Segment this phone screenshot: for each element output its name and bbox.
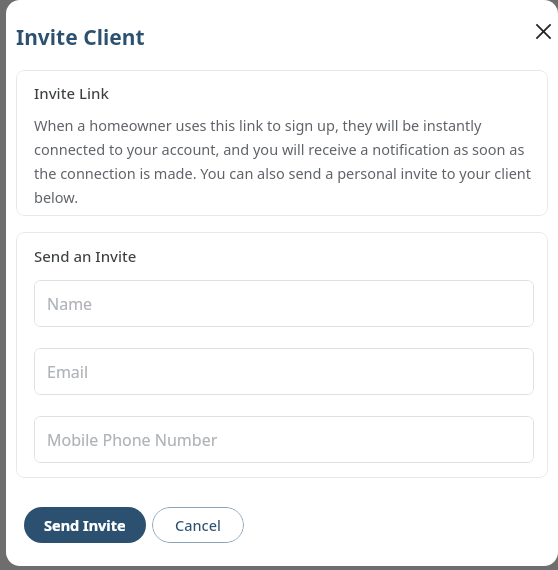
staticText: Name xyxy=(47,293,93,315)
staticText: When a homeowner uses this link to sign … xyxy=(34,115,534,207)
staticText: Cancel xyxy=(175,515,221,535)
button[interactable]: Mobile Phone Number xyxy=(34,416,534,463)
button[interactable]: Name xyxy=(34,280,534,327)
button[interactable]: Email xyxy=(34,348,534,395)
staticText: Email xyxy=(47,361,89,383)
button[interactable]: Close xyxy=(525,13,558,49)
staticText: Mobile Phone Number xyxy=(47,429,218,451)
staticText: Send Invite xyxy=(44,515,126,535)
staticText: Send an Invite xyxy=(34,246,137,266)
staticText: Invite Link xyxy=(34,83,109,103)
button[interactable]: Cancel xyxy=(152,507,244,543)
staticText: Invite Client xyxy=(16,23,145,52)
button[interactable]: Send Invite xyxy=(24,507,146,543)
